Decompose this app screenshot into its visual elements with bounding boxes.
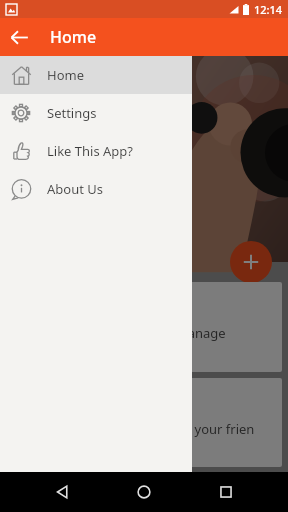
staticText: Rate us on the store and tell your frien… xyxy=(20,420,268,455)
button[interactable]: Back xyxy=(42,472,82,512)
staticText: Welcome Home xyxy=(16,144,180,174)
staticText: Settings xyxy=(47,104,97,122)
staticText: Home xyxy=(50,26,97,48)
button[interactable]: Back xyxy=(0,18,38,56)
staticText: Like This App? xyxy=(47,142,133,160)
staticText: About Us xyxy=(20,485,89,500)
button[interactable]: About Us xyxy=(0,170,192,208)
button[interactable]: Recents xyxy=(206,472,246,512)
button[interactable]: Like This App? xyxy=(0,132,192,170)
staticText: Home xyxy=(47,66,84,84)
button[interactable]: Like This App? xyxy=(6,378,282,467)
staticText: 12:14 xyxy=(254,2,283,17)
button[interactable]: Home xyxy=(0,56,192,94)
button[interactable]: Settings xyxy=(0,94,192,132)
button[interactable]: Home xyxy=(124,472,164,512)
button[interactable]: Settings xyxy=(6,282,282,372)
button[interactable]: Add xyxy=(230,241,272,283)
staticText: Change app settings and manage messages … xyxy=(20,324,268,360)
staticText: About Us xyxy=(47,180,104,198)
button[interactable]: About Us xyxy=(6,473,282,512)
